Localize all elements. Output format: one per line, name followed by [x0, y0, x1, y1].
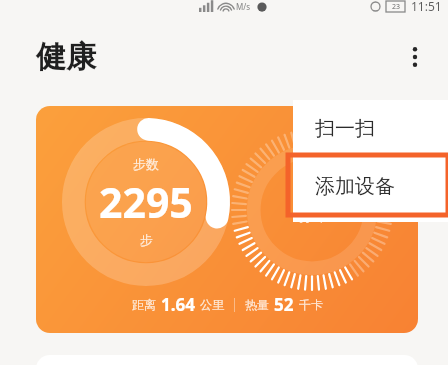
button[interactable]: 添加设备	[293, 156, 448, 216]
staticText: 千卡	[299, 297, 323, 312]
staticText: 23	[392, 2, 401, 12]
button[interactable]: More options	[392, 34, 438, 80]
button[interactable]: 步数	[36, 106, 418, 333]
staticText: 步数	[133, 156, 159, 172]
staticText: 11:51	[411, 0, 442, 14]
staticText: 分钟	[299, 208, 325, 224]
staticText: 1.64	[161, 293, 195, 316]
staticText: 步	[140, 232, 153, 248]
staticText: 距离	[132, 297, 156, 312]
staticText: 52	[274, 293, 294, 316]
staticText: 健康	[36, 38, 96, 76]
staticText: 公里	[200, 297, 224, 312]
staticText: M/s	[236, 1, 251, 12]
staticText: 添加设备	[315, 174, 395, 199]
button[interactable]: 扫一扫	[293, 100, 448, 156]
staticText: 热量	[245, 297, 269, 312]
staticText: 2295	[99, 174, 193, 230]
staticText: 扫一扫	[315, 116, 375, 141]
